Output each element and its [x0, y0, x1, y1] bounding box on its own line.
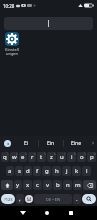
- staticText: y: [16, 181, 20, 189]
- button[interactable]: s: [15, 166, 23, 176]
- button[interactable]: Emoji: [25, 194, 33, 204]
- staticText: n: [66, 181, 70, 189]
- staticText: b: [56, 181, 60, 189]
- button[interactable]: d: [24, 166, 32, 176]
- staticText: h: [55, 167, 59, 175]
- button[interactable]: p: [87, 152, 96, 162]
- button[interactable]: y: [14, 180, 22, 190]
- button[interactable]: ,: [16, 194, 24, 204]
- button[interactable]: i: [67, 152, 76, 162]
- staticText: 7: [64, 152, 66, 156]
- button[interactable]: Search: [82, 194, 96, 204]
- button[interactable]: q: [1, 152, 9, 162]
- staticText: .: [76, 195, 78, 203]
- button[interactable]: h: [52, 166, 61, 176]
- button[interactable]: j: [62, 166, 71, 176]
- staticText: 5: [44, 152, 46, 156]
- button[interactable]: l: [82, 166, 91, 176]
- staticText: f: [36, 167, 39, 175]
- staticText: g: [45, 167, 49, 175]
- staticText: q: [3, 153, 7, 161]
- staticText: 6: [54, 152, 56, 156]
- staticText: a: [8, 167, 12, 175]
- button[interactable]: v: [43, 180, 52, 190]
- staticText: l: [86, 167, 88, 175]
- staticText: Ei: [24, 140, 29, 147]
- staticText: DE • EN: [46, 197, 60, 202]
- staticText: s: [18, 167, 21, 175]
- staticText: w: [12, 153, 17, 161]
- staticText: Eine: [71, 140, 81, 147]
- button[interactable]: Ein: [39, 136, 63, 150]
- button[interactable]: Shift: [1, 180, 13, 190]
- staticText: t: [40, 153, 43, 161]
- button[interactable]: .: [73, 194, 81, 204]
- button[interactable]: e: [19, 152, 27, 162]
- button[interactable]: Backspace: [83, 180, 96, 190]
- button[interactable]: DE • EN: [34, 194, 72, 204]
- staticText: o: [80, 153, 84, 161]
- staticText: ?123: [4, 197, 13, 202]
- staticText: e: [21, 153, 25, 161]
- button[interactable]: Recent apps: [64, 206, 78, 220]
- staticText: z: [50, 153, 53, 161]
- button[interactable]: Eine: [64, 136, 88, 150]
- staticText: p: [90, 153, 94, 161]
- staticText: 1: [7, 152, 9, 156]
- button[interactable]: Back: [16, 206, 30, 220]
- staticText: 8: [74, 152, 76, 156]
- button[interactable]: b: [53, 180, 62, 190]
- staticText: 9: [84, 152, 86, 156]
- staticText: ,: [19, 195, 21, 203]
- button[interactable]: f: [33, 166, 41, 176]
- button[interactable]: r: [28, 152, 36, 162]
- staticText: m: [75, 181, 81, 189]
- staticText: u: [60, 153, 64, 161]
- staticText: r: [31, 153, 34, 161]
- staticText: 2: [16, 152, 18, 156]
- button[interactable]: More suggestions: [88, 136, 97, 150]
- button[interactable]: [4, 17, 93, 30]
- staticText: Einstellungen: [5, 47, 19, 56]
- staticText: 3: [25, 152, 27, 156]
- button[interactable]: o: [77, 152, 86, 162]
- staticText: i: [71, 153, 73, 161]
- button[interactable]: u: [57, 152, 66, 162]
- staticText: 0: [94, 152, 96, 156]
- button[interactable]: ?123: [1, 194, 15, 204]
- staticText: d: [26, 167, 30, 175]
- button[interactable]: g: [42, 166, 51, 176]
- button[interactable]: Ei: [14, 136, 38, 150]
- button[interactable]: n: [63, 180, 72, 190]
- button[interactable]: Home: [40, 206, 54, 220]
- button[interactable]: a: [6, 166, 14, 176]
- staticText: k: [75, 167, 79, 175]
- staticText: c: [36, 181, 39, 189]
- button[interactable]: Einstellungen: [5, 32, 19, 56]
- button[interactable]: k: [72, 166, 81, 176]
- staticText: 10:28: [3, 3, 15, 9]
- button[interactable]: m: [73, 180, 82, 190]
- button[interactable]: w: [10, 152, 18, 162]
- staticText: 4: [34, 152, 36, 156]
- button[interactable]: x: [23, 180, 32, 190]
- staticText: x: [26, 181, 30, 189]
- button[interactable]: c: [33, 180, 42, 190]
- staticText: j: [66, 167, 68, 175]
- staticText: Ein: [47, 140, 55, 147]
- button[interactable]: z: [47, 152, 56, 162]
- staticText: v: [46, 181, 50, 189]
- button[interactable]: Expand suggestions: [0, 136, 14, 150]
- button[interactable]: t: [37, 152, 46, 162]
